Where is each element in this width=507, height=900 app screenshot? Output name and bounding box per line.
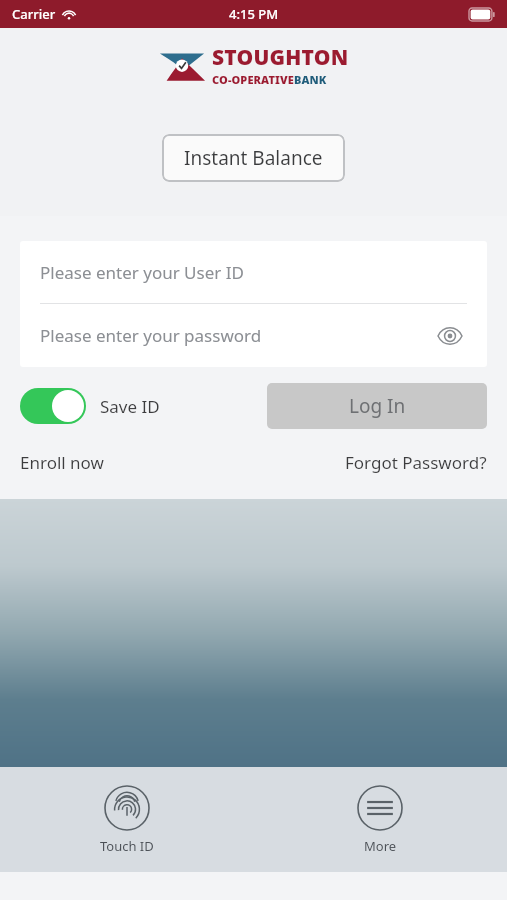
- staticText: Log In: [349, 393, 406, 419]
- staticText: Save ID: [100, 395, 160, 418]
- button[interactable]: Forgot Password?: [345, 451, 487, 474]
- staticText: Please enter your User ID: [40, 261, 244, 284]
- button[interactable]: Save ID: [20, 388, 160, 424]
- staticText: CO-OPERATIVE: [212, 72, 294, 87]
- staticText: Carrier: [12, 5, 56, 23]
- staticText: STOUGHTON: [212, 43, 349, 72]
- button[interactable]: Log In: [267, 383, 487, 429]
- button[interactable]: Instant Balance: [162, 134, 345, 182]
- staticText: Touch ID: [100, 837, 154, 855]
- staticText: Forgot Password?: [345, 451, 487, 474]
- button[interactable]: Show password: [433, 319, 467, 353]
- button[interactable]: Please enter your User ID: [20, 241, 487, 303]
- button[interactable]: Enroll now: [20, 451, 104, 474]
- button[interactable]: More: [339, 779, 421, 861]
- staticText: Instant Balance: [184, 145, 323, 171]
- staticText: BANK: [294, 72, 327, 87]
- button[interactable]: Touch ID: [82, 779, 172, 861]
- staticText: Enroll now: [20, 451, 104, 474]
- button[interactable]: Please enter your password: [20, 304, 487, 367]
- staticText: Please enter your password: [40, 324, 262, 347]
- staticText: 4:15 PM: [229, 5, 279, 23]
- staticText: More: [364, 837, 397, 855]
